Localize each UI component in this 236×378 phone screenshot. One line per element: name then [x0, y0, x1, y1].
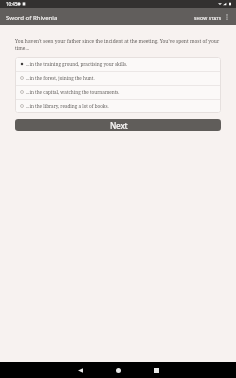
button[interactable]: Back	[61, 362, 99, 378]
staticText: ...in the capital, watching the tourname…	[26, 89, 120, 95]
button[interactable]: ...in the forest, joining the hunt.	[15, 71, 221, 85]
staticText: ...in the training ground, practising yo…	[26, 61, 128, 67]
button[interactable]: More options	[220, 8, 234, 25]
staticText: ...in the forest, joining the hunt.	[26, 75, 95, 81]
staticText: Next	[110, 120, 128, 131]
staticText: Sword of Rhivenia	[6, 13, 58, 21]
button[interactable]: Home	[99, 362, 137, 378]
button[interactable]: ...in the capital, watching the tourname…	[15, 85, 221, 99]
button[interactable]: ...in the training ground, practising yo…	[15, 57, 221, 71]
staticText: 10:45	[6, 1, 18, 7]
staticText: ...in the library, reading a lot of book…	[26, 103, 109, 109]
button[interactable]: SHOW STATS	[191, 10, 225, 24]
button[interactable]: ...in the library, reading a lot of book…	[15, 99, 221, 113]
staticText: SHOW STATS	[194, 15, 222, 21]
staticText: You haven't seen your father since the i…	[15, 38, 221, 52]
button[interactable]: Next	[15, 119, 221, 131]
button[interactable]: Recent apps	[137, 362, 175, 378]
